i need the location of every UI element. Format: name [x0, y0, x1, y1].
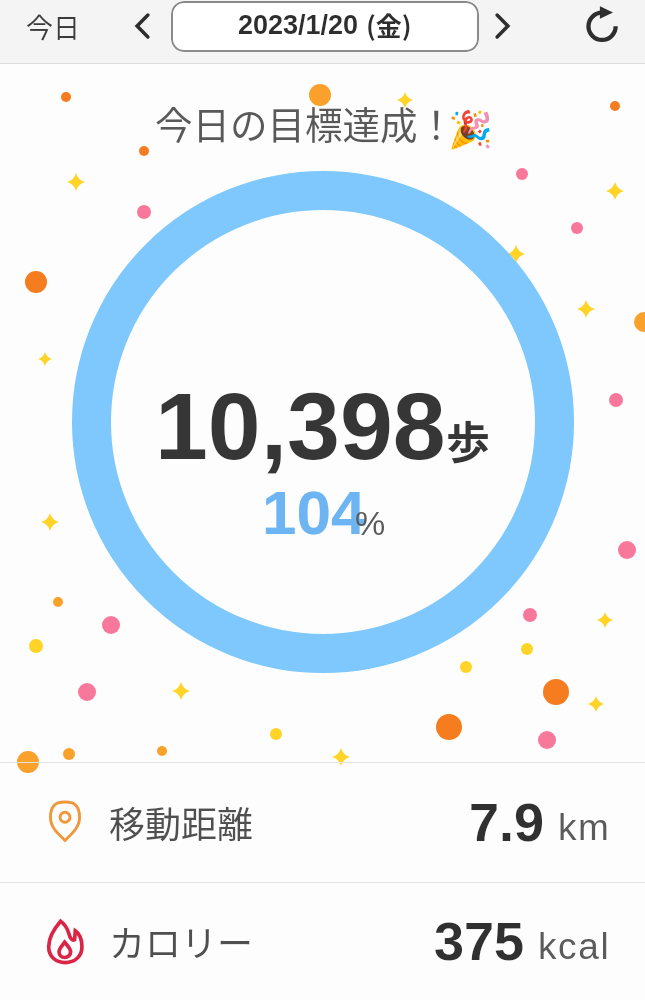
button[interactable]: Previous day — [105, 0, 171, 52]
staticText: 今日 — [26, 7, 80, 46]
button[interactable]: 今日 — [0, 0, 105, 52]
staticText: 今日の目標達成！ — [155, 95, 455, 149]
button[interactable]: Next day — [479, 0, 532, 52]
staticText: カロリー — [109, 915, 254, 967]
staticText: km — [558, 807, 611, 848]
button[interactable]: Refresh — [562, 0, 645, 52]
staticText: (金) — [366, 6, 412, 44]
staticText: 歩 — [446, 408, 490, 472]
staticText: 移動距離 — [109, 796, 254, 848]
staticText: 2023/1/20 — [238, 10, 359, 40]
staticText: % — [355, 504, 386, 542]
staticText: 🎉 — [448, 109, 493, 151]
button[interactable]: 移動距離 — [0, 762, 645, 882]
staticText: 10,398 — [155, 373, 446, 479]
button[interactable]: 2023/1/20 — [171, 1, 479, 52]
staticText: 375 — [434, 911, 525, 971]
button[interactable]: カロリー — [0, 882, 645, 1000]
staticText: 7.9 — [469, 792, 545, 852]
staticText: kcal — [538, 926, 611, 967]
staticText: 104 — [262, 478, 366, 547]
